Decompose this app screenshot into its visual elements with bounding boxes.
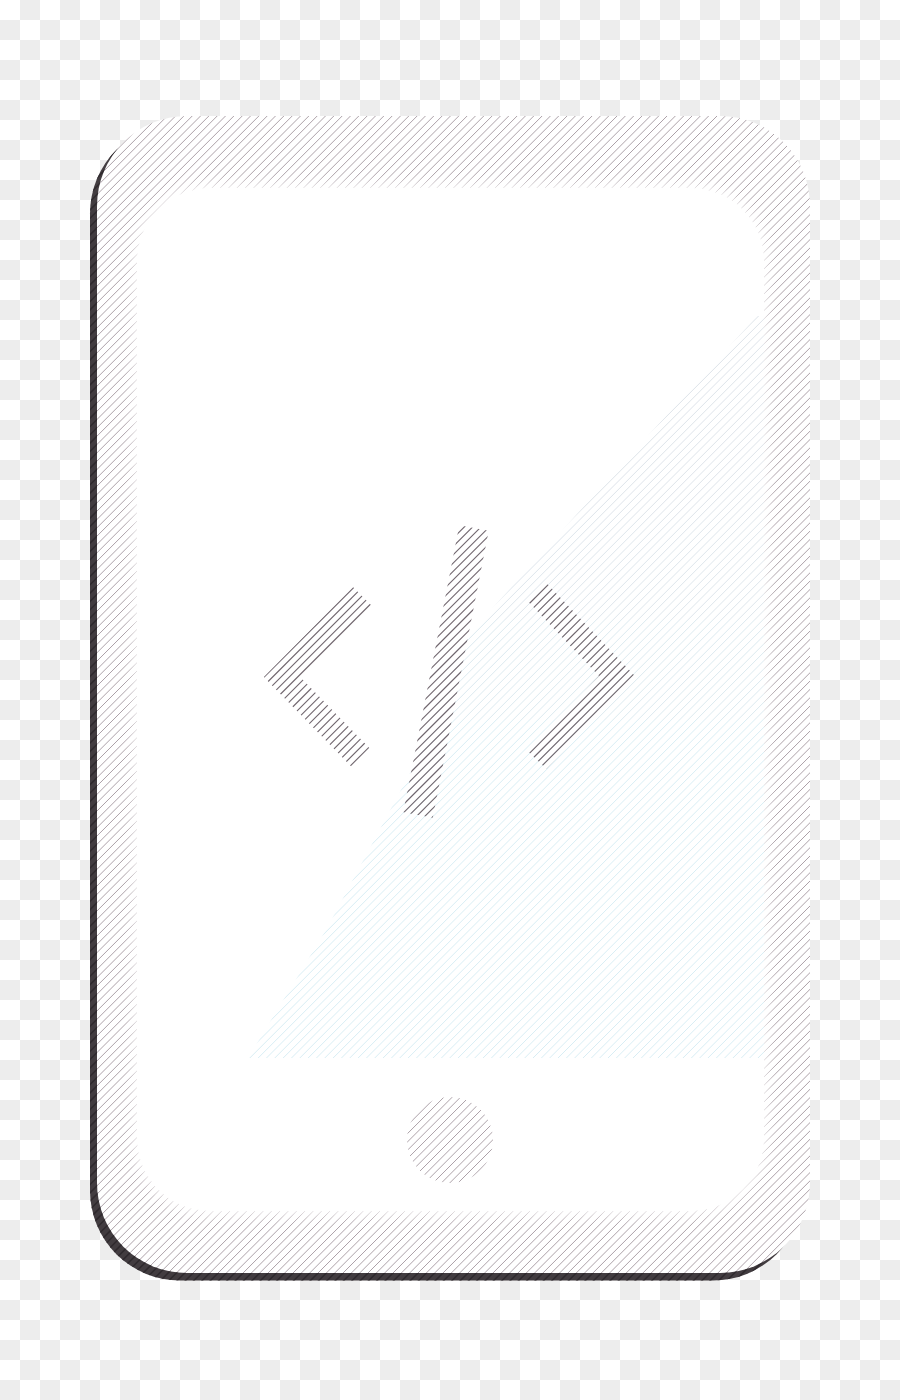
button[interactable]: Mobile application development code icon — [0, 0, 900, 1400]
